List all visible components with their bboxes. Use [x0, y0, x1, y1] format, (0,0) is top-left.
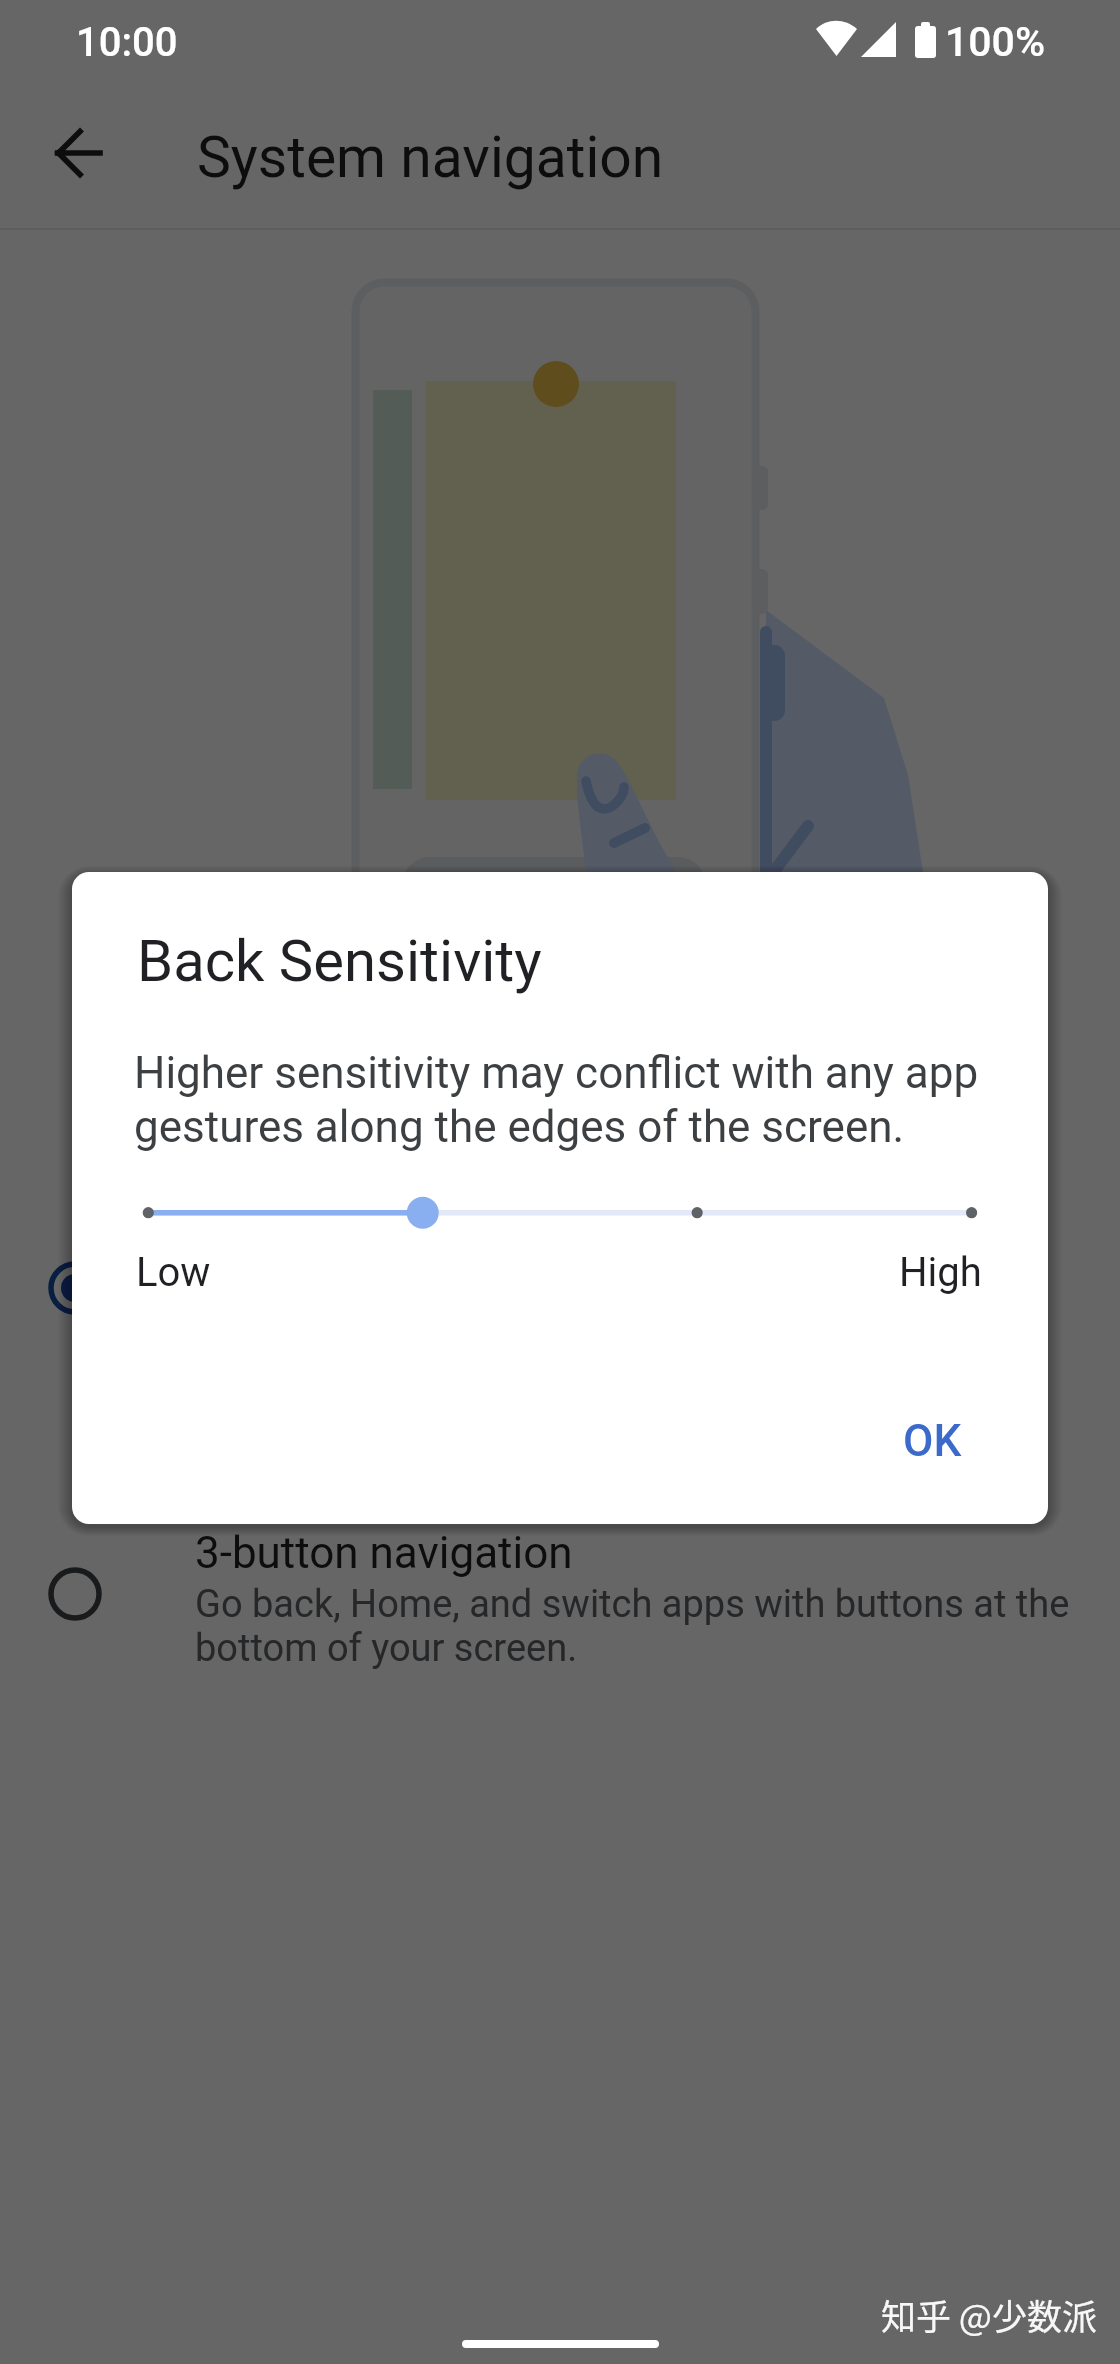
staticText: Low	[136, 1249, 211, 1296]
staticText: Higher sensitivity may conflict with any…	[134, 1047, 979, 1152]
button[interactable]: Gesture navigation	[0, 1207, 1120, 1397]
staticText: 100%	[945, 18, 1046, 66]
staticText: Gesture navigation	[195, 1231, 562, 1283]
staticText: 10:00	[76, 19, 178, 66]
staticText: Back Sensitivity	[137, 927, 542, 995]
button[interactable]: Navigate up	[23, 97, 135, 209]
button[interactable]: 3-button navigation	[0, 1503, 1120, 1693]
staticText: 3-button navigation	[195, 1527, 573, 1579]
staticText: OK	[903, 1415, 962, 1467]
staticText: Go back, Home, and switch apps with butt…	[195, 1582, 1070, 1670]
staticText: High	[899, 1249, 982, 1296]
staticText: 知乎 @少数派	[881, 2289, 1097, 2340]
button[interactable]: OK	[875, 1393, 990, 1489]
staticText: System navigation	[197, 124, 664, 191]
staticText: To go Home, swipe up from the bottom of …	[195, 1286, 962, 1374]
